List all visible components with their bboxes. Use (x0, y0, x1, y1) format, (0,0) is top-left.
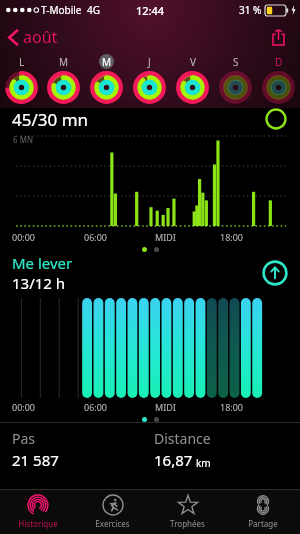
staticText: 16,87 (154, 450, 193, 470)
staticText: 31 % (239, 3, 262, 17)
staticText: 6 MN (13, 134, 33, 145)
staticText: Distance (154, 429, 211, 448)
staticText: 00:00 (12, 231, 36, 243)
staticText: M (59, 55, 69, 69)
staticText: août (23, 26, 58, 48)
staticText: Exercices (95, 518, 130, 529)
staticText: 18:00 (220, 401, 244, 413)
staticText: Trophées (170, 518, 205, 529)
button[interactable]: M (85, 54, 128, 108)
button[interactable]: Partager (264, 23, 292, 51)
staticText: M (102, 55, 112, 69)
staticText: V (190, 55, 196, 69)
staticText: Pas (12, 429, 36, 448)
staticText: 21 587 (12, 450, 59, 470)
button[interactable]: Exercices (75, 490, 150, 534)
button[interactable]: S (214, 54, 257, 108)
button[interactable]: D (257, 54, 300, 108)
staticText: T-Mobile (41, 3, 82, 17)
button[interactable]: V (171, 54, 214, 108)
staticText: MIDI (155, 231, 176, 243)
staticText: S (233, 55, 239, 69)
staticText: 13/12 h (12, 273, 66, 293)
staticText: 12:44 (136, 3, 165, 18)
staticText: km (196, 456, 211, 470)
button[interactable]: M (42, 54, 85, 108)
staticText: L (19, 55, 25, 69)
button[interactable]: Trophées (150, 490, 225, 534)
button[interactable]: J (128, 54, 171, 108)
button[interactable]: Partage (225, 490, 300, 534)
button[interactable]: Historique (0, 490, 75, 534)
staticText: 18:00 (220, 231, 244, 243)
staticText: 4G (87, 3, 100, 17)
staticText: D (275, 55, 283, 69)
staticText: Partage (248, 518, 278, 529)
button[interactable]: août (0, 22, 68, 52)
staticText: 06:00 (84, 231, 108, 243)
button[interactable]: Pas (0, 423, 150, 473)
staticText: 00:00 (12, 401, 36, 413)
staticText: 06:00 (84, 401, 108, 413)
button[interactable]: Distance (150, 423, 300, 473)
staticText: MIDI (155, 401, 176, 413)
staticText: 45/30 mn (12, 108, 89, 130)
button[interactable]: Détails (262, 260, 288, 286)
button[interactable]: Plus (264, 108, 288, 130)
staticText: Historique (18, 518, 58, 529)
staticText: Me lever (12, 253, 73, 273)
button[interactable]: L (0, 54, 42, 108)
staticText: J (148, 55, 151, 69)
